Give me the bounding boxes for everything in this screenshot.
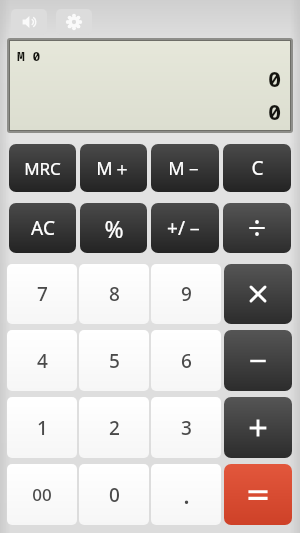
- button[interactable]: M＋: [80, 144, 147, 192]
- staticText: 5: [109, 348, 120, 374]
- staticText: 0: [268, 63, 282, 93]
- button[interactable]: Multiply: [224, 264, 292, 324]
- staticText: 7: [37, 281, 48, 307]
- button[interactable]: 9: [151, 264, 221, 324]
- button[interactable]: 2: [79, 397, 149, 458]
- button[interactable]: +/－: [151, 203, 219, 253]
- staticText: AC: [31, 215, 55, 241]
- staticText: M＋: [96, 156, 131, 181]
- button[interactable]: Equals: [224, 464, 292, 525]
- button[interactable]: MRC: [9, 144, 76, 192]
- button[interactable]: Add: [224, 397, 292, 458]
- staticText: M 0: [17, 47, 41, 65]
- staticText: 3: [181, 415, 192, 441]
- button[interactable]: .: [151, 464, 221, 525]
- button[interactable]: 1: [7, 397, 77, 458]
- staticText: 1: [37, 415, 48, 441]
- button[interactable]: 0: [79, 464, 149, 525]
- staticText: 4: [37, 348, 48, 374]
- button[interactable]: [223, 203, 291, 253]
- staticText: 9: [181, 281, 192, 307]
- staticText: 0: [109, 482, 120, 508]
- button[interactable]: AC: [9, 203, 76, 253]
- staticText: .: [183, 478, 190, 511]
- button[interactable]: C: [223, 144, 291, 192]
- staticText: 6: [181, 348, 192, 374]
- button[interactable]: Sound: [11, 9, 47, 35]
- button[interactable]: 6: [151, 330, 221, 391]
- staticText: %: [104, 213, 124, 244]
- other: Divide: [221, 203, 293, 253]
- button[interactable]: 5: [79, 330, 149, 391]
- staticText: MRC: [24, 157, 61, 180]
- button[interactable]: 7: [7, 264, 77, 324]
- staticText: 00: [32, 483, 52, 506]
- staticText: 8: [109, 281, 120, 307]
- button[interactable]: M－: [151, 144, 219, 192]
- staticText: 2: [109, 415, 120, 441]
- button[interactable]: 4: [7, 330, 77, 391]
- button[interactable]: Settings: [56, 9, 92, 35]
- staticText: 0: [268, 96, 282, 126]
- button[interactable]: 8: [79, 264, 149, 324]
- button[interactable]: 3: [151, 397, 221, 458]
- staticText: M－: [168, 156, 203, 181]
- staticText: C: [251, 155, 264, 181]
- button[interactable]: %: [80, 203, 147, 253]
- staticText: +/－: [167, 215, 204, 241]
- button[interactable]: 00: [7, 464, 77, 525]
- button[interactable]: Subtract: [224, 330, 292, 391]
